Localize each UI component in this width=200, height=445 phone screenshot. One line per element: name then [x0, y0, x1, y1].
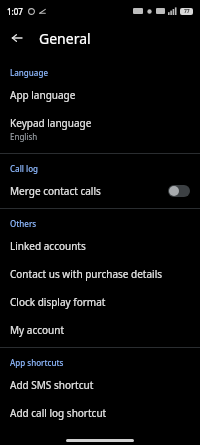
button[interactable]: Clock display format — [0, 288, 200, 316]
staticText: Add call log shortcut — [10, 406, 107, 420]
staticText: Merge contact calls — [10, 184, 101, 198]
button[interactable]: Merge contact calls — [0, 177, 200, 205]
button[interactable]: Contact us with purchase details — [0, 260, 200, 288]
button[interactable]: Back — [6, 27, 28, 49]
staticText: App language — [10, 88, 76, 102]
staticText: Keypad language — [10, 116, 92, 130]
staticText: App shortcuts — [10, 357, 64, 368]
button[interactable]: Add call log shortcut — [0, 399, 200, 427]
staticText: 1:07 — [7, 6, 23, 17]
staticText: English — [10, 131, 38, 142]
staticText: 77 — [184, 8, 190, 15]
staticText: General — [39, 29, 91, 48]
button[interactable]: App language — [0, 81, 200, 109]
staticText: Call log — [10, 163, 39, 174]
staticText: Clock display format — [10, 295, 106, 309]
button[interactable]: Linked accounts — [0, 232, 200, 260]
button[interactable]: Add SMS shortcut — [0, 371, 200, 399]
staticText: Contact us with purchase details — [10, 267, 163, 281]
staticText: Add SMS shortcut — [10, 378, 94, 392]
staticText: Linked accounts — [10, 239, 86, 253]
staticText: Others — [10, 218, 37, 229]
button[interactable]: My account — [0, 316, 200, 344]
button[interactable]: Keypad language — [0, 109, 200, 149]
staticText: Language — [10, 67, 48, 78]
staticText: My account — [10, 323, 64, 337]
